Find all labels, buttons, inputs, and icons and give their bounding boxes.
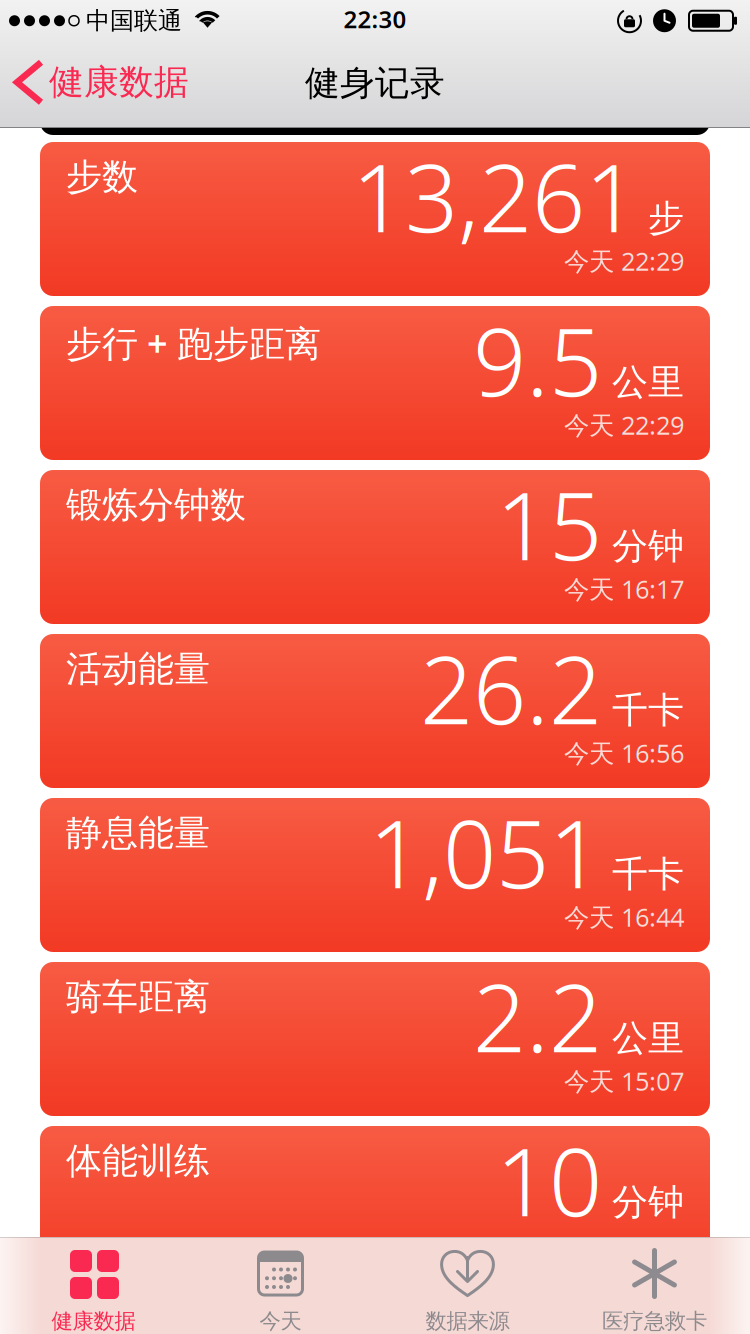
staticText: 活动能量 [66,647,210,691]
staticText: 健康数据 [49,61,189,104]
staticText: 15 [496,462,602,586]
staticText: 26.2 [420,626,602,750]
staticText: 1,051 [369,790,602,914]
staticText: 10 [496,1118,602,1242]
button[interactable]: 返回健康数据 [0,61,189,104]
staticText: 数据来源 [425,1308,509,1334]
staticText: 今天 16:56 [564,736,684,770]
staticText: 22:30 [343,3,406,35]
button[interactable]: 今天 [187,1237,374,1334]
button[interactable]: 锻炼分钟数 [40,470,710,624]
button[interactable]: 骑车距离 [40,962,710,1116]
staticText: 中国联通 [86,6,182,35]
staticText: 医疗急救卡 [602,1308,707,1334]
staticText: 骑车距离 [66,975,210,1019]
staticText: 今天 22:29 [564,244,684,278]
staticText: 分钟 [612,1180,684,1224]
staticText: 今天 16:44 [564,900,684,934]
staticText: 公里 [612,360,684,404]
staticText: 今天 [259,1308,301,1334]
staticText: 体能训练 [66,1139,210,1183]
button[interactable]: 健康数据 [0,1237,187,1334]
button[interactable]: 静息能量 [40,798,710,952]
staticText: 公里 [612,1016,684,1060]
staticText: 9.5 [473,298,602,422]
staticText: 今天 15:07 [564,1064,684,1098]
button[interactable]: 步行 + 跑步距离 [40,306,710,460]
button[interactable]: 体能训练 [40,1126,710,1280]
staticText: 今天 16:17 [564,572,684,606]
staticText: 步数 [66,155,138,199]
button[interactable]: 医疗急救卡 [561,1237,748,1334]
staticText: 分钟 [612,524,684,568]
staticText: 步行 + 跑步距离 [66,319,321,367]
staticText: 锻炼分钟数 [66,483,246,527]
staticText: 健康数据 [51,1308,135,1334]
button[interactable]: 数据来源 [374,1237,561,1334]
button[interactable]: 活动能量 [40,634,710,788]
button[interactable]: 步数 [40,142,710,296]
staticText: 2.2 [473,954,602,1078]
staticText: 步 [648,196,684,240]
staticText: 13,261 [352,134,638,258]
staticText: 千卡 [612,852,684,896]
staticText: 今天 22:29 [564,408,684,442]
staticText: 千卡 [612,688,684,732]
staticText: 静息能量 [66,811,210,855]
staticText: 健身记录 [305,62,445,105]
